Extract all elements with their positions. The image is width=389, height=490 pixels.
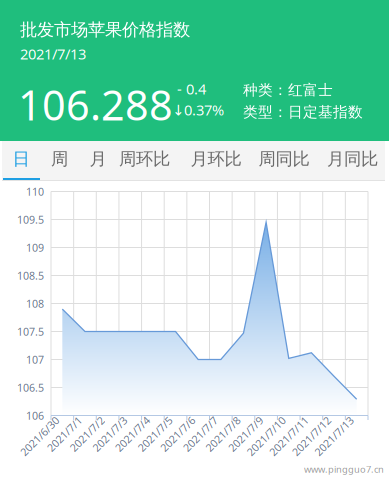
staticText: 108.5 bbox=[17, 268, 44, 283]
staticText: 周环比 bbox=[119, 148, 170, 170]
staticText: 批发市场苹果价格指数 bbox=[20, 19, 190, 40]
staticText: 2021/7/1 bbox=[44, 430, 88, 445]
staticText: 2021/7/8 bbox=[202, 430, 246, 445]
button[interactable]: 周同比 bbox=[251, 141, 316, 177]
staticText: 2021/7/4 bbox=[112, 430, 156, 445]
staticText: 种类：红富士 bbox=[243, 81, 333, 99]
staticText: 2021/7/13 bbox=[310, 430, 360, 445]
staticText: 2021/7/6 bbox=[157, 430, 201, 445]
button[interactable]: 周 bbox=[44, 141, 74, 177]
button[interactable]: 月同比 bbox=[320, 141, 385, 177]
staticText: 2021/7/7 bbox=[180, 430, 224, 445]
staticText: 2021/7/11 bbox=[264, 430, 314, 445]
staticText: 月 bbox=[89, 148, 106, 170]
button[interactable]: 日 bbox=[6, 141, 36, 177]
button[interactable]: 周环比 bbox=[112, 141, 177, 177]
staticText: 109.5 bbox=[17, 212, 44, 227]
staticText: 周同比 bbox=[258, 148, 309, 170]
button[interactable]: 月 bbox=[83, 141, 113, 177]
staticText: 108 bbox=[26, 296, 44, 311]
staticText: 109 bbox=[26, 240, 44, 255]
staticText: 2021/7/13 bbox=[20, 44, 86, 63]
staticText: 106 bbox=[26, 408, 44, 423]
staticText: 2021/7/5 bbox=[134, 430, 178, 445]
staticText: 2021/7/2 bbox=[67, 430, 111, 445]
staticText: 2021/7/12 bbox=[287, 430, 337, 445]
staticText: www.pingguo7.cn bbox=[304, 463, 384, 475]
staticText: 类型：日定基指数 bbox=[243, 103, 363, 121]
staticText: 2021/7/10 bbox=[242, 430, 292, 445]
staticText: - 0.4 bbox=[177, 79, 206, 98]
staticText: ↓0.37% bbox=[172, 100, 224, 119]
staticText: 日 bbox=[12, 148, 29, 170]
staticText: 106.288 bbox=[18, 77, 173, 132]
button[interactable]: 月环比 bbox=[183, 141, 248, 177]
staticText: 月同比 bbox=[327, 148, 378, 170]
staticText: 月环比 bbox=[190, 148, 241, 170]
staticText: 2021/7/9 bbox=[225, 430, 269, 445]
staticText: 周 bbox=[51, 148, 68, 170]
staticText: 2021/6/30 bbox=[15, 430, 65, 445]
staticText: 2021/7/3 bbox=[89, 430, 133, 445]
staticText: 107 bbox=[26, 352, 44, 367]
staticText: 106.5 bbox=[17, 380, 44, 395]
staticText: 110 bbox=[26, 184, 44, 199]
staticText: 107.5 bbox=[17, 324, 44, 339]
